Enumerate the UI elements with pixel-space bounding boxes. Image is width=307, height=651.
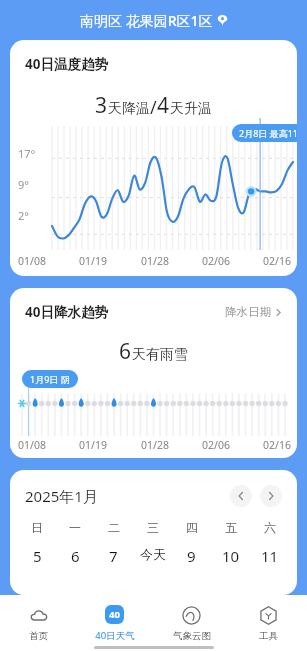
staticText: 01/19 [79, 438, 107, 452]
staticText: 11 [261, 546, 279, 566]
staticText: 6 [119, 337, 132, 366]
button[interactable]: 5 [18, 546, 56, 566]
staticText: 三 [147, 520, 159, 535]
staticText: 二 [108, 520, 120, 535]
button[interactable]: 降水日期 [225, 305, 282, 319]
button[interactable]: 7 [94, 546, 133, 566]
staticText: 南明区 花果园R区1区 [80, 11, 213, 30]
staticText: 10 [222, 546, 240, 566]
staticText: 天降温 [108, 100, 150, 118]
other: 工具 [259, 606, 278, 625]
staticText: 气象云图 [173, 630, 211, 642]
staticText: 2° [18, 208, 29, 223]
staticText: 2025年1月 [25, 486, 98, 506]
staticText: 40日降水趋势 [25, 303, 108, 321]
button[interactable]: 40日温度趋势 [10, 40, 297, 276]
staticText: 40日天气 [95, 629, 135, 642]
staticText: 02/16 [263, 438, 291, 452]
staticText: 6 [71, 546, 80, 566]
button[interactable]: 首页 [0, 595, 76, 651]
button[interactable]: Previous month [230, 485, 252, 507]
staticText: 02/06 [202, 254, 230, 268]
staticText: 9 [187, 546, 196, 566]
staticText: 40 [109, 608, 120, 621]
other: Location [217, 15, 228, 26]
button[interactable]: 11 [250, 546, 289, 566]
staticText: 4 [157, 91, 170, 120]
staticText: 01/08 [18, 254, 46, 268]
button[interactable]: 6 [56, 546, 94, 566]
staticText: 四 [186, 520, 198, 535]
staticText: 02/16 [263, 254, 291, 268]
staticText: 01/28 [141, 254, 169, 268]
staticText: 01/28 [141, 438, 169, 452]
other: 40日天气 [105, 605, 124, 624]
staticText: 天升温 [170, 100, 212, 118]
staticText: / [150, 95, 157, 120]
button[interactable]: 今天 [133, 546, 172, 562]
staticText: 一 [69, 520, 81, 535]
staticText: 7 [109, 546, 118, 566]
staticText: 02/06 [202, 438, 230, 452]
staticText: 五 [225, 520, 237, 535]
staticText: 2月8日 最高11° [239, 127, 297, 139]
staticText: 首页 [29, 630, 48, 642]
staticText: 01/08 [18, 438, 46, 452]
button[interactable]: 南明区 花果园R区1区 [80, 11, 228, 30]
staticText: 5 [33, 546, 42, 566]
button[interactable]: 气象云图 [153, 595, 230, 651]
staticText: 01/19 [79, 254, 107, 268]
button[interactable]: Next month [260, 485, 282, 507]
button[interactable]: 40日天气 [76, 595, 153, 651]
button[interactable]: 10 [211, 546, 250, 566]
staticText: 3 [95, 91, 108, 120]
staticText: 工具 [259, 630, 278, 642]
staticText: 9° [18, 177, 29, 192]
other: 首页 [29, 606, 49, 626]
staticText: 17° [18, 146, 36, 161]
staticText: 天有雨雪 [132, 346, 188, 364]
staticText: 1月9日 阴 [30, 373, 70, 385]
staticText: 降水日期 [225, 305, 271, 319]
staticText: 六 [264, 520, 276, 535]
staticText: 今天 [140, 546, 166, 562]
button[interactable]: 9 [172, 546, 211, 566]
button[interactable]: 工具 [230, 595, 307, 651]
other: 气象云图 [182, 606, 201, 625]
staticText: 40日温度趋势 [25, 55, 108, 73]
staticText: 日 [31, 520, 43, 535]
